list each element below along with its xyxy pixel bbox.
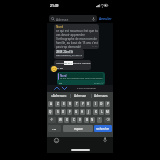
staticText: T [76,102,78,106]
button[interactable]: H [80,109,85,115]
button[interactable] [54,138,59,143]
staticText: 21:56 [92,45,98,48]
staticText: Q [49,110,52,114]
button[interactable]: 123 [48,125,61,132]
staticText: Y [82,102,84,106]
button[interactable] [103,137,107,143]
button[interactable] [104,117,111,123]
button[interactable]: B [84,117,89,123]
button[interactable]: rechercher [94,125,112,132]
staticText: X [66,118,68,122]
button[interactable]: M [105,109,110,115]
staticText: United Sta [56,61,69,64]
staticText: 21:58 ✓✓ [94,82,104,85]
staticText: L [101,110,103,114]
staticText: on dit [56,66,63,69]
staticText: 123 [52,127,57,130]
button[interactable]: R [67,101,72,107]
button[interactable]: Annuler [99,15,112,22]
button[interactable] [54,85,68,92]
staticText: Annuler [99,16,112,21]
staticText: N [91,118,94,122]
staticText: E [63,102,65,106]
staticText: Adresse [74,94,87,98]
button[interactable] [48,117,56,123]
button[interactable]: K [93,109,98,115]
staticText: K [95,110,97,114]
staticText: 21:39 [50,3,59,7]
staticText: ce qui est nouveau c'est que tu vas devo… [60,77,103,80]
button[interactable]: Nord [57,72,105,85]
button[interactable]: G [74,109,79,115]
button[interactable]: Z [55,101,60,107]
staticText: rechercher [96,127,110,131]
staticText: Ok [59,81,63,84]
staticText: espace [74,127,83,131]
button[interactable]: E [61,101,66,107]
staticText: Z [57,102,59,106]
staticText: I [95,102,97,106]
staticText: P [107,102,109,106]
staticText: tes of A [64,62,73,65]
button[interactable]: A [48,101,53,107]
button[interactable]: Y [80,101,85,107]
staticText: G [75,110,78,114]
staticText: M [106,110,109,114]
button[interactable]: X [64,117,69,123]
button[interactable] [50,65,57,72]
staticText: V [79,118,81,122]
staticText: Adresses [94,94,108,98]
button[interactable]: espace [63,125,93,132]
button[interactable]: United Sta [54,60,91,70]
staticText: «Adresse» [51,94,67,98]
button[interactable]: J [86,109,91,115]
button[interactable]: Adresse [70,92,90,99]
staticText: Nord [60,74,67,78]
staticText: H [81,110,84,114]
staticText: O [100,102,103,106]
staticText: San Francisco, CA 94110 [56,54,82,57]
button[interactable]: L [99,109,104,115]
staticText: A [50,102,52,106]
button[interactable]: U [86,101,91,107]
staticText: Adresse [56,17,69,21]
button[interactable]: V [77,117,82,123]
button[interactable]: P [105,101,110,107]
staticText: 2888 22nd St [56,50,74,54]
staticText: F [69,110,71,114]
button[interactable]: F [67,109,72,115]
staticText: W [59,118,62,122]
button[interactable]: O [99,101,104,107]
button[interactable]: ' [97,117,102,123]
staticText: J [88,110,89,114]
button[interactable]: T [74,101,79,107]
button[interactable]: N [90,117,95,123]
staticText: B [86,118,88,122]
button[interactable]: «Adresse» [48,92,69,99]
button[interactable]: Nord [54,24,99,49]
staticText: S [57,110,59,114]
button[interactable]: Q [48,109,53,115]
button[interactable]: W [58,117,63,123]
staticText: 5 sur 9 résultats [77,86,96,89]
staticText: C [73,118,75,122]
button[interactable]: 2888 22nd St [54,49,84,59]
button[interactable]: Adresse [49,15,97,22]
button[interactable]: I [93,101,98,107]
staticText: U [87,102,90,106]
staticText: ce qui est nouveau c'est que tu vas devo… [56,29,98,49]
staticText: D [62,110,65,114]
staticText: ' [99,118,100,122]
staticText: R [69,102,71,106]
button[interactable]: Adresses [91,92,111,99]
button[interactable]: S [55,109,60,115]
staticText: Nord [56,25,63,29]
button[interactable]: D [61,109,66,115]
staticText: merica comme [73,61,91,64]
button[interactable]: C [71,117,76,123]
